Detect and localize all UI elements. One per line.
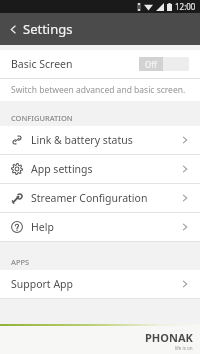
button[interactable]: Basic Screen toggle, off	[139, 57, 189, 71]
staticText: CONFIGURATION	[11, 113, 73, 123]
staticText: Basic Screen	[11, 57, 73, 71]
staticText: Off	[145, 59, 157, 70]
staticText: life is on	[175, 345, 193, 351]
staticText: Link & battery status	[31, 133, 133, 147]
staticText: Help	[31, 220, 54, 234]
button[interactable]: App settings	[0, 155, 200, 183]
button[interactable]: Help	[0, 213, 200, 241]
staticText: Support App	[11, 277, 74, 291]
staticText: Switch between advanced and basic screen…	[11, 84, 186, 96]
button[interactable]: Back	[3, 19, 23, 39]
button[interactable]: Link & battery status	[0, 126, 200, 154]
staticText: PHONAK	[145, 330, 193, 345]
button[interactable]: Basic Screen	[0, 50, 200, 78]
staticText: Settings	[23, 20, 73, 38]
staticText: 12:00	[175, 1, 196, 12]
staticText: Streamer Configuration	[31, 191, 148, 205]
staticText: APPS	[11, 257, 30, 267]
button[interactable]: Support App	[0, 270, 200, 298]
button[interactable]: Streamer Configuration	[0, 184, 200, 212]
staticText: App settings	[31, 162, 93, 176]
